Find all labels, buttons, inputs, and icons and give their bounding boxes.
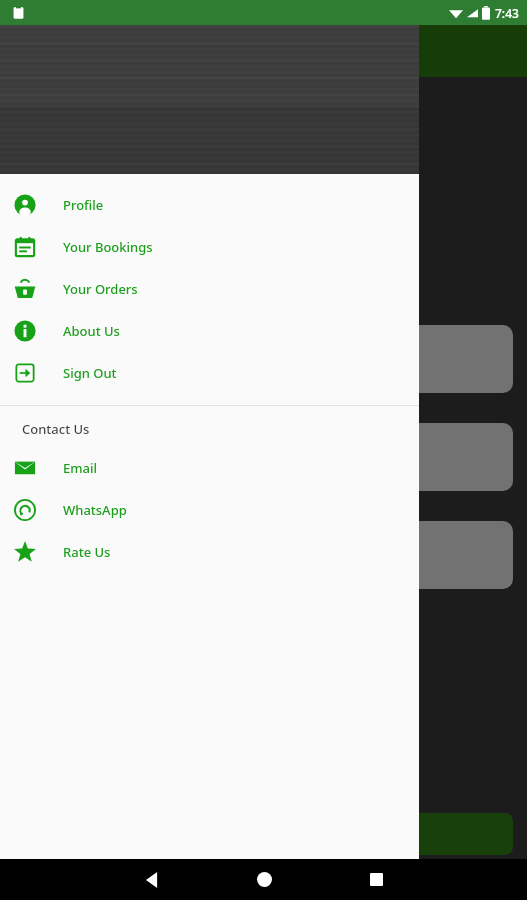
- button[interactable]: [300, 325, 513, 393]
- button[interactable]: Recent apps: [320, 859, 432, 900]
- staticText: Your Bookings: [63, 238, 153, 256]
- staticText: Email: [63, 459, 98, 477]
- staticText: Sign Out: [63, 364, 117, 382]
- button[interactable]: Home: [208, 859, 320, 900]
- button[interactable]: Sign Out: [0, 352, 419, 394]
- button[interactable]: [300, 521, 513, 589]
- staticText: Your Orders: [63, 280, 138, 298]
- button[interactable]: Back: [96, 859, 208, 900]
- button[interactable]: Your Bookings: [0, 226, 419, 268]
- button[interactable]: Email: [0, 447, 419, 489]
- button[interactable]: [300, 813, 513, 855]
- button[interactable]: Rate Us: [0, 531, 419, 573]
- button[interactable]: Your Orders: [0, 268, 419, 310]
- staticText: Profile: [63, 196, 104, 214]
- staticText: 7:43: [495, 5, 519, 21]
- button[interactable]: About Us: [0, 310, 419, 352]
- staticText: Rate Us: [63, 543, 111, 561]
- staticText: Contact Us: [22, 420, 90, 438]
- staticText: About Us: [63, 322, 120, 340]
- staticText: WhatsApp: [63, 501, 127, 519]
- button[interactable]: WhatsApp: [0, 489, 419, 531]
- button[interactable]: Profile: [0, 184, 419, 226]
- button[interactable]: [300, 423, 513, 491]
